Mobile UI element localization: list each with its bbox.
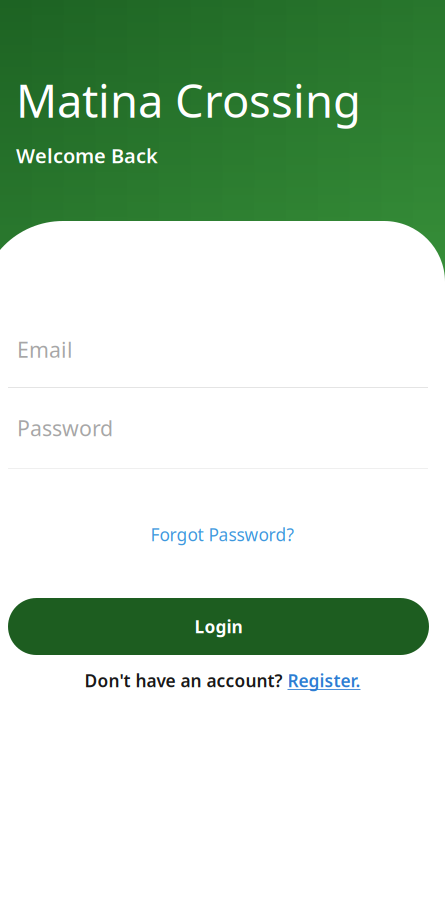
staticText: Email [17, 335, 73, 364]
button[interactable]: Register. [287, 669, 360, 692]
staticText: Password [17, 414, 113, 442]
button[interactable]: Login [8, 598, 429, 655]
staticText: Welcome Back [16, 142, 158, 169]
button[interactable]: Forgot Password? [150, 523, 294, 546]
button[interactable]: Email [0, 312, 445, 388]
staticText: Matina Crossing [16, 70, 361, 130]
staticText: Don't have an account? [84, 669, 282, 692]
staticText: Login [194, 615, 242, 638]
staticText: Register. [287, 669, 360, 692]
staticText: Forgot Password? [150, 523, 294, 546]
button[interactable]: Password [0, 388, 445, 469]
